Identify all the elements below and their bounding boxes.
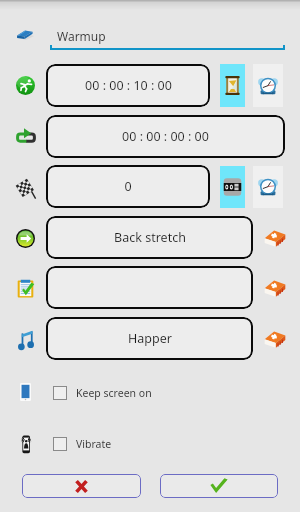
staticText: Vibrate [76, 437, 112, 451]
button[interactable]: 00 : 00 : 10 : 00 [46, 64, 210, 107]
button[interactable]: 00 : 00 : 00 : 00 [46, 115, 285, 158]
button[interactable]: Countdown timer [220, 64, 245, 107]
button[interactable]: Vibrate [53, 436, 112, 452]
button[interactable]: Warmup [50, 20, 286, 50]
button[interactable]: Browse [264, 330, 286, 348]
staticText: Happer [128, 330, 172, 347]
staticText: Warmup [57, 28, 106, 44]
button[interactable]: Back stretch [46, 216, 253, 259]
button[interactable]: Cancel [22, 474, 141, 498]
button[interactable]: Browse [264, 229, 286, 247]
staticText: 00 : 00 : 00 : 00 [122, 128, 209, 145]
staticText: Back stretch [114, 229, 186, 246]
staticText: 00 : 00 : 10 : 00 [85, 77, 172, 94]
button[interactable] [46, 266, 253, 309]
button[interactable]: 0 [46, 165, 210, 208]
staticText: 0 [124, 178, 132, 195]
button[interactable]: Alarm [253, 64, 283, 107]
button[interactable]: Keep screen on [53, 385, 152, 401]
staticText: Keep screen on [76, 386, 152, 400]
button[interactable]: Alarm [253, 166, 283, 208]
button[interactable]: Accept [160, 474, 278, 498]
button[interactable]: Counter [220, 166, 245, 208]
button[interactable]: Happer [46, 317, 253, 360]
button[interactable]: Browse [264, 279, 286, 297]
